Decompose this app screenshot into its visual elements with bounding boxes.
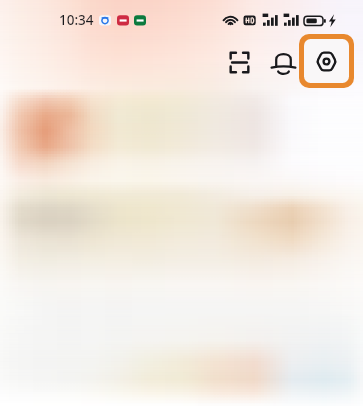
staticText: 10:34 [59, 11, 94, 29]
button[interactable]: Notifications [268, 47, 299, 78]
button[interactable]: Settings [304, 39, 349, 83]
button[interactable]: Scan [224, 47, 255, 78]
